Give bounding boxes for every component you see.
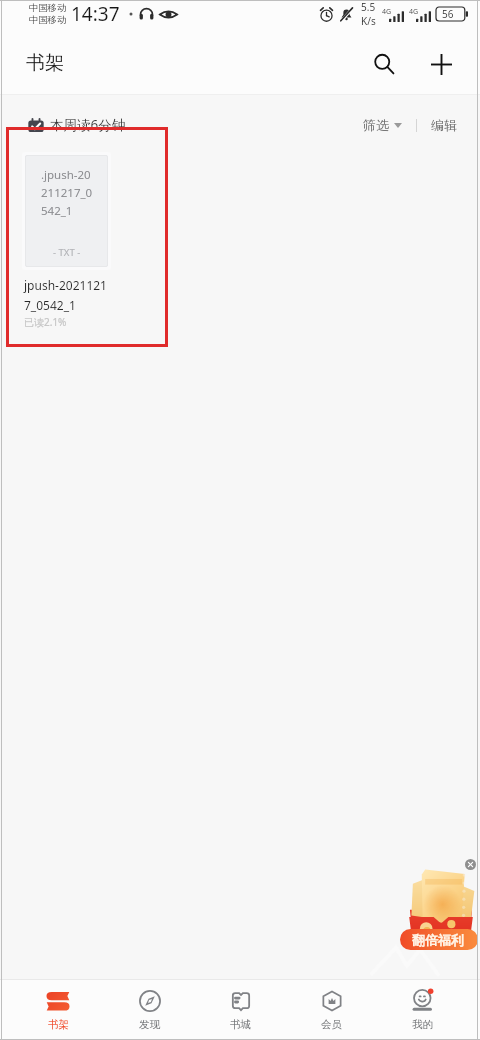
button[interactable]: Add book: [424, 47, 458, 81]
staticText: K/s: [361, 14, 376, 28]
button[interactable]: Close promotion: [461, 855, 479, 873]
staticText: 我的: [412, 1018, 433, 1031]
button[interactable]: 本周读6分钟: [24, 112, 130, 138]
staticText: 书架: [26, 51, 64, 75]
staticText: 4G: [382, 7, 392, 17]
staticText: 筛选: [363, 117, 389, 133]
button[interactable]: 我的: [377, 980, 468, 1040]
button[interactable]: 编辑: [428, 112, 460, 138]
staticText: 中国移动: [29, 14, 67, 26]
staticText: 已读2.1%: [24, 315, 67, 329]
button[interactable]: Search: [367, 47, 401, 81]
staticText: 书架: [48, 1018, 69, 1031]
button[interactable]: 筛选: [360, 112, 405, 138]
staticText: 14:37: [71, 1, 120, 27]
staticText: 中国移动: [29, 2, 67, 14]
staticText: 书城: [230, 1018, 251, 1031]
staticText: 56: [442, 7, 454, 21]
button[interactable]: 翻倍福利: [398, 852, 480, 955]
staticText: .jpush-20211217_0542_1: [41, 167, 96, 218]
button[interactable]: 会员: [286, 980, 377, 1040]
staticText: 发现: [139, 1018, 160, 1031]
button[interactable]: 书架: [12, 980, 104, 1040]
staticText: 翻倍福利: [412, 932, 464, 948]
staticText: 本周读6分钟: [50, 116, 126, 134]
staticText: 4G: [409, 7, 419, 17]
staticText: 会员: [321, 1018, 342, 1031]
staticText: - TXT -: [53, 246, 81, 259]
staticText: 5.5: [361, 0, 376, 14]
button[interactable]: 发现: [104, 980, 195, 1040]
button[interactable]: .jpush-20211217_0542_1: [22, 152, 114, 329]
staticText: jpush-20211217_0542_1: [24, 277, 109, 313]
button[interactable]: 书城: [195, 980, 286, 1040]
